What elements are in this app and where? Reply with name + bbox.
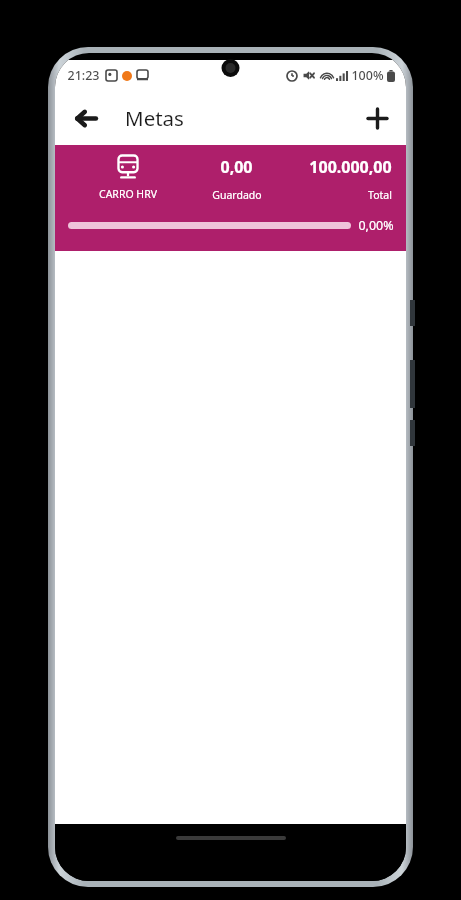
button[interactable]: Back bbox=[65, 97, 107, 139]
staticText: 21:23 bbox=[67, 67, 100, 84]
staticText: 100.000,00 bbox=[309, 156, 392, 178]
staticText: CARRO HRV bbox=[99, 187, 157, 201]
staticText: 100% bbox=[351, 67, 384, 84]
button[interactable]: CARRO HRV bbox=[55, 145, 406, 251]
staticText: Guardado bbox=[212, 188, 262, 202]
staticText: Total bbox=[368, 188, 392, 202]
staticText: Metas bbox=[125, 104, 184, 132]
staticText: 0,00 bbox=[220, 156, 253, 178]
staticText: 0,00% bbox=[358, 217, 394, 234]
button[interactable]: Add goal bbox=[356, 97, 398, 139]
